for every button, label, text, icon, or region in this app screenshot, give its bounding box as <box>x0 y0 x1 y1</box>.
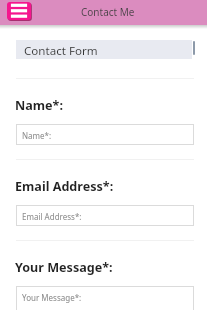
staticText: Email Address*: <box>15 178 114 195</box>
staticText: Your Message*: <box>22 292 82 303</box>
staticText: Name*: <box>15 97 63 114</box>
staticText: Contact Me <box>81 5 135 19</box>
staticText: Contact Form <box>24 43 98 59</box>
button[interactable]: Email Address*: <box>16 205 194 226</box>
staticText: Name*: <box>22 130 52 141</box>
button[interactable]: Menu <box>7 2 31 20</box>
staticText: Your Message*: <box>15 259 113 276</box>
button[interactable]: Name*: <box>16 124 194 145</box>
button[interactable]: Your Message*: <box>16 286 194 310</box>
staticText: Email Address*: <box>22 211 82 222</box>
